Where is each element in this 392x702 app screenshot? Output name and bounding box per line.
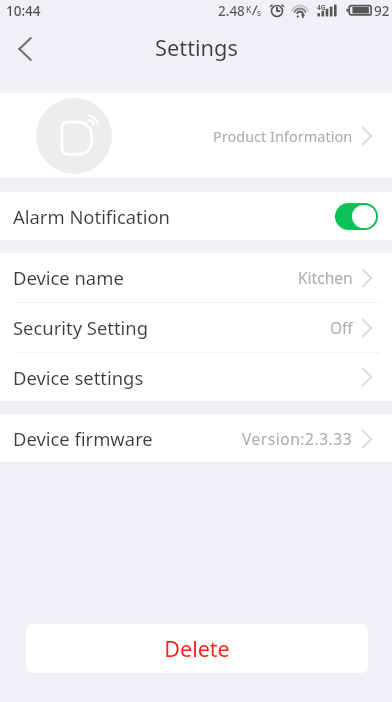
button[interactable]: Delete	[26, 624, 368, 673]
staticText: Alarm Notification	[13, 204, 170, 229]
button[interactable]: Device settings	[0, 353, 392, 401]
staticText: 4G	[317, 3, 326, 12]
staticText: Off	[330, 317, 353, 338]
button[interactable]: Back	[0, 24, 48, 72]
staticText: Device settings	[13, 365, 144, 390]
staticText: Delete	[164, 634, 230, 663]
staticText: Kitchen	[298, 267, 353, 288]
staticText: Device firmware	[13, 426, 153, 451]
button[interactable]: Alarm notification toggle	[335, 203, 378, 230]
staticText: Settings	[155, 33, 238, 63]
staticText: Version:2.3.33	[242, 428, 353, 449]
staticText: Product Information	[213, 126, 353, 146]
staticText: Security Setting	[13, 315, 148, 340]
staticText: 10:44	[6, 2, 41, 20]
staticText: s	[257, 7, 262, 19]
button[interactable]: Security Setting	[0, 303, 392, 352]
staticText: 2.48	[218, 2, 245, 20]
button[interactable]: Device firmware	[0, 414, 392, 462]
staticText: Device name	[13, 265, 124, 290]
button[interactable]: Alarm Notification	[0, 192, 392, 240]
staticText: 92	[374, 2, 390, 20]
staticText: K	[246, 4, 252, 16]
button[interactable]: Device name	[0, 253, 392, 302]
button[interactable]: Product Information	[0, 93, 392, 178]
